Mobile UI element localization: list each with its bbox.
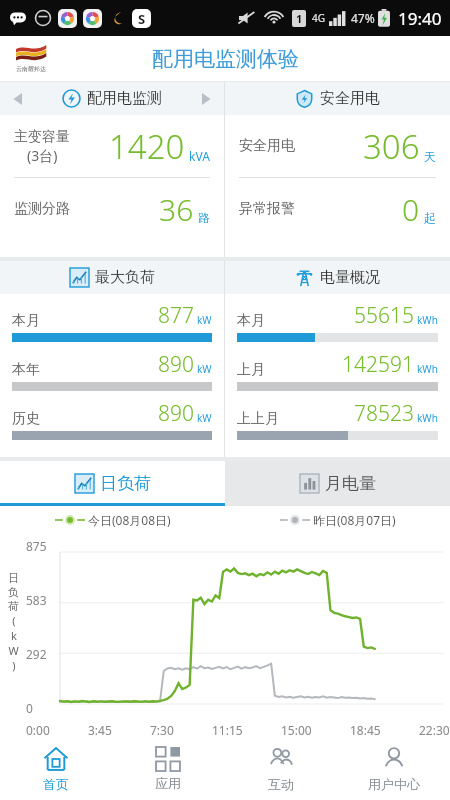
staticText: 0	[402, 189, 420, 230]
staticText: 22:30	[419, 722, 450, 738]
staticText: 荷	[8, 599, 19, 613]
staticText: 最大负荷	[95, 268, 155, 287]
staticText: 应用	[155, 775, 181, 791]
button[interactable]: 本月	[237, 301, 438, 342]
button[interactable]: 首页	[0, 738, 112, 800]
staticText: 11:15	[212, 722, 243, 738]
staticText: 配用电监测	[87, 89, 162, 108]
staticText: 7:30	[150, 722, 174, 738]
staticText: 起	[424, 210, 436, 225]
staticText: 负	[8, 585, 19, 599]
button[interactable]: 日负荷	[0, 461, 225, 506]
staticText: kWh	[417, 362, 438, 376]
staticText: )	[12, 658, 16, 673]
staticText: 用户中心	[368, 776, 420, 792]
staticText: 877	[158, 301, 194, 330]
staticText: 0	[26, 700, 33, 716]
staticText: kWh	[417, 313, 438, 327]
button[interactable]: Previous	[10, 91, 26, 107]
staticText: 292	[26, 646, 47, 662]
button[interactable]: 安全用电	[239, 115, 436, 177]
staticText: 异常报警	[239, 200, 295, 218]
staticText: S	[138, 10, 146, 28]
staticText: 18:45	[350, 722, 381, 738]
staticText: 142591	[342, 350, 414, 379]
staticText: 本年	[12, 361, 40, 379]
staticText: 天	[424, 149, 436, 164]
staticText: 15:00	[281, 722, 312, 738]
staticText: 0:00	[26, 722, 50, 738]
staticText: 本月	[237, 312, 265, 330]
staticText: 历史	[12, 410, 40, 428]
staticText: 78523	[354, 399, 414, 428]
staticText: k	[11, 628, 17, 643]
staticText: kW	[197, 313, 212, 327]
button[interactable]: 历史	[12, 399, 212, 440]
staticText: 583	[26, 592, 47, 608]
button[interactable]: 异常报警	[239, 178, 436, 240]
staticText: W	[8, 643, 19, 658]
staticText: 云南耀邦达	[16, 65, 46, 73]
staticText: 890	[158, 350, 194, 379]
staticText: 月电量	[325, 473, 376, 494]
staticText: 3:45	[88, 722, 112, 738]
button[interactable]: 上上月	[237, 399, 438, 440]
staticText: 主变容量	[14, 128, 70, 146]
button[interactable]: 应用	[112, 738, 224, 800]
staticText: kWh	[417, 411, 438, 425]
staticText: 本月	[12, 312, 40, 330]
staticText: 306	[363, 124, 420, 169]
staticText: kW	[197, 411, 212, 425]
staticText: 电量概况	[320, 268, 380, 287]
staticText: 47%	[351, 10, 375, 26]
staticText: 安全用电	[320, 89, 380, 108]
staticText: 路	[198, 210, 210, 225]
staticText: 36	[159, 189, 194, 230]
staticText: 昨日(08月07日)	[313, 512, 396, 528]
staticText: 互动	[268, 776, 294, 792]
staticText: 上上月	[237, 410, 279, 428]
button[interactable]: 用户中心	[337, 738, 450, 800]
button[interactable]: 上月	[237, 350, 438, 391]
staticText: (3台)	[27, 146, 58, 165]
staticText: 今日(08月08日)	[88, 512, 171, 528]
staticText: 日	[8, 571, 19, 585]
staticText: 1420	[109, 124, 185, 169]
staticText: 安全用电	[239, 137, 295, 155]
staticText: 监测分路	[14, 200, 70, 218]
button[interactable]: 月电量	[225, 461, 450, 506]
staticText: 4G	[312, 11, 325, 25]
button[interactable]: 本月	[12, 301, 212, 342]
staticText: 1	[296, 11, 303, 26]
staticText: 890	[158, 399, 194, 428]
staticText: 55615	[354, 301, 414, 330]
button[interactable]: 本年	[12, 350, 212, 391]
button[interactable]: 主变容量	[14, 115, 210, 177]
staticText: (	[12, 613, 16, 628]
staticText: kW	[197, 362, 212, 376]
staticText: 首页	[43, 776, 69, 792]
button[interactable]: 监测分路	[14, 178, 210, 240]
button[interactable]: 互动	[224, 738, 337, 800]
staticText: kVA	[189, 148, 210, 164]
staticText: 875	[26, 538, 47, 554]
staticText: 上月	[237, 361, 265, 379]
button[interactable]: Next	[198, 91, 214, 107]
staticText: 配用电监测体验	[152, 46, 299, 72]
staticText: 19:40	[398, 7, 442, 30]
staticText: 日负荷	[100, 473, 151, 494]
